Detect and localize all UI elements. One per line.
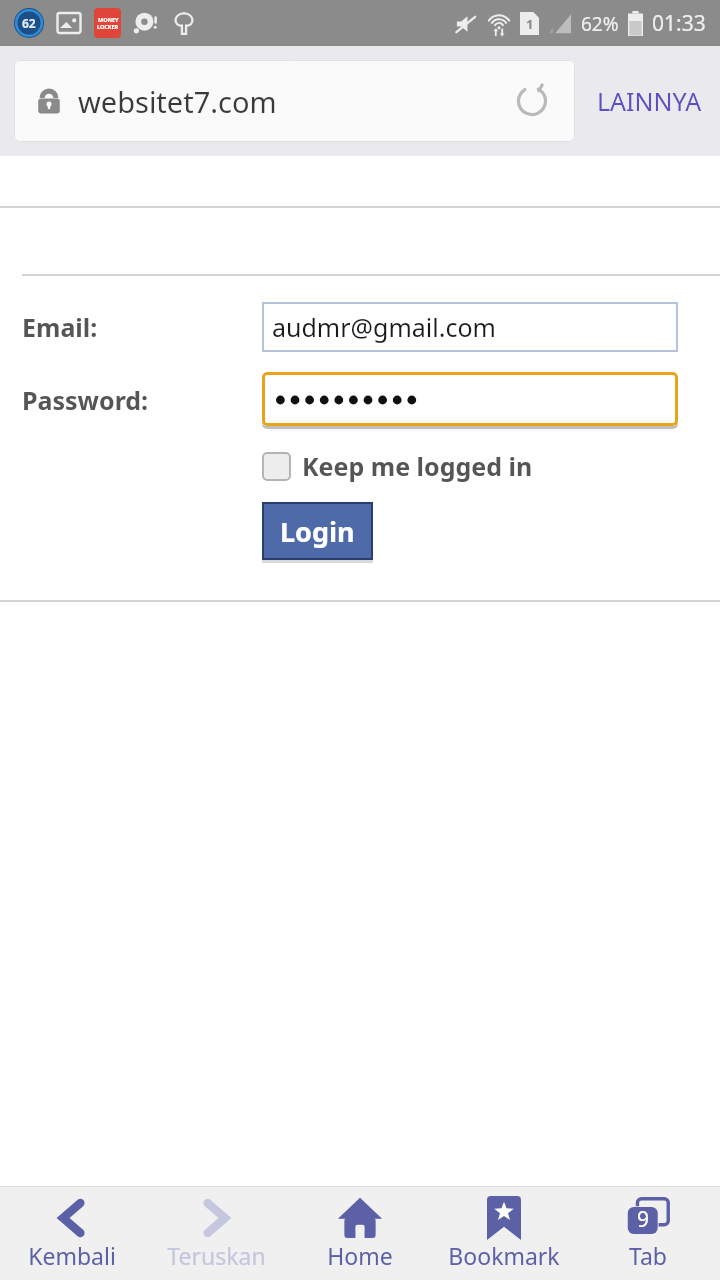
button[interactable]: Teruskan [144, 1187, 288, 1280]
staticText: 62% [581, 11, 619, 37]
staticText: Teruskan [167, 1240, 266, 1271]
button[interactable]: Keep me logged in [262, 445, 533, 487]
staticText: 01:33 [652, 9, 706, 38]
button[interactable]: Bookmark [432, 1187, 576, 1280]
staticText: Kembali [28, 1240, 116, 1271]
button[interactable]: websitet7.com [14, 60, 575, 142]
staticText: Login [280, 513, 355, 550]
button[interactable]: LAINNYA [593, 76, 706, 126]
button[interactable]: Reload [509, 78, 555, 124]
button[interactable]: Login [262, 502, 373, 560]
staticText: 62 [22, 15, 36, 31]
button[interactable]: Home [288, 1187, 432, 1280]
staticText: Password: [22, 383, 262, 417]
staticText: MONEY [98, 16, 119, 23]
staticText: Tab [629, 1240, 667, 1271]
staticText: Email: [22, 310, 262, 344]
button[interactable] [262, 372, 678, 426]
staticText: audmr@gmail.com [272, 310, 496, 344]
staticText: 9 [637, 1205, 650, 1234]
staticText: websitet7.com [78, 82, 277, 121]
staticText: LAINNYA [597, 84, 702, 118]
staticText: 1 [526, 15, 534, 33]
button[interactable]: audmr@gmail.com [262, 302, 678, 352]
staticText: Bookmark [448, 1240, 560, 1271]
button[interactable]: 9 [576, 1187, 720, 1280]
button[interactable]: Kembali [0, 1187, 144, 1280]
staticText: Home [327, 1240, 393, 1271]
staticText: Keep me logged in [302, 449, 533, 483]
staticText: LOCKER [97, 23, 119, 30]
